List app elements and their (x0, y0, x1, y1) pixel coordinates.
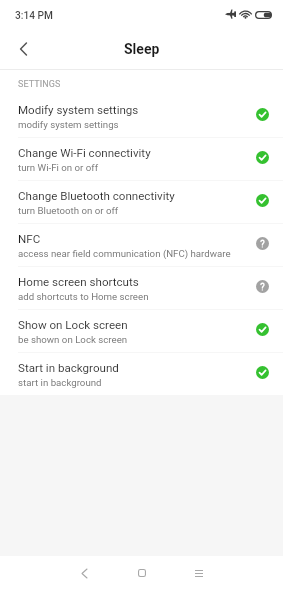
staticText: Sleep (124, 41, 160, 57)
staticText: access near field communication (NFC) ha… (18, 248, 231, 259)
staticText: 3:14 PM (15, 10, 54, 22)
button[interactable]: Home (127, 558, 157, 588)
staticText: Modify system settings (18, 103, 139, 117)
staticText: Change Wi-Fi connectivity (18, 146, 151, 160)
staticText: add shortcuts to Home screen (18, 291, 149, 302)
staticText: be shown on Lock screen (18, 334, 128, 345)
button[interactable]: Back (69, 558, 99, 588)
button[interactable]: Back (8, 34, 38, 64)
staticText: turn Bluetooth on or off (18, 205, 119, 216)
button[interactable]: Home screen shortcuts (0, 267, 283, 309)
staticText: Change Bluetooth connectivity (18, 189, 175, 203)
staticText: start in background (18, 377, 102, 388)
button[interactable]: Start in background (0, 353, 283, 395)
button[interactable]: NFC (0, 224, 283, 266)
staticText: Home screen shortcuts (18, 275, 139, 289)
staticText: SETTINGS (18, 79, 61, 90)
button[interactable]: Show on Lock screen (0, 310, 283, 352)
staticText: NFC (18, 232, 41, 246)
staticText: Start in background (18, 361, 119, 375)
button[interactable]: Modify system settings (0, 95, 283, 137)
button[interactable]: Change Wi-Fi connectivity (0, 138, 283, 180)
button[interactable]: Change Bluetooth connectivity (0, 181, 283, 223)
staticText: turn Wi-Fi on or off (18, 162, 99, 173)
staticText: modify system settings (18, 119, 119, 130)
staticText: Show on Lock screen (18, 318, 128, 332)
button[interactable]: Recent apps (184, 558, 214, 588)
